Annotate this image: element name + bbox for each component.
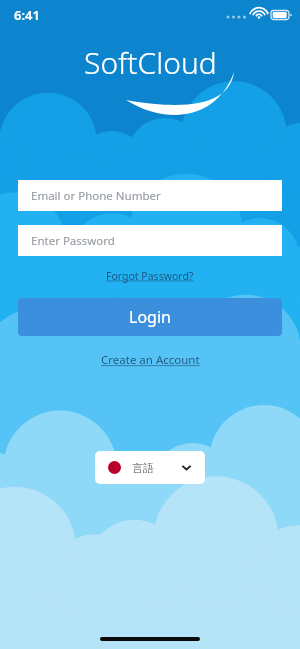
staticText: Login — [129, 306, 171, 328]
button[interactable]: Create an Account — [95, 350, 206, 370]
staticText: Enter Password — [31, 233, 115, 249]
staticText: Create an Account — [101, 352, 200, 368]
button[interactable]: Email or Phone Number — [18, 180, 282, 211]
button[interactable]: Forgot Password? — [100, 267, 200, 285]
staticText: Forgot Password? — [106, 269, 194, 283]
staticText: 言語 — [132, 461, 154, 475]
staticText: Email or Phone Number — [31, 188, 161, 204]
button[interactable]: Login — [18, 298, 282, 336]
staticText: 6:41 — [14, 6, 40, 24]
button[interactable]: 言語 — [95, 451, 205, 484]
button[interactable]: Enter Password — [18, 225, 282, 256]
staticText: SoftCloud — [84, 42, 217, 83]
